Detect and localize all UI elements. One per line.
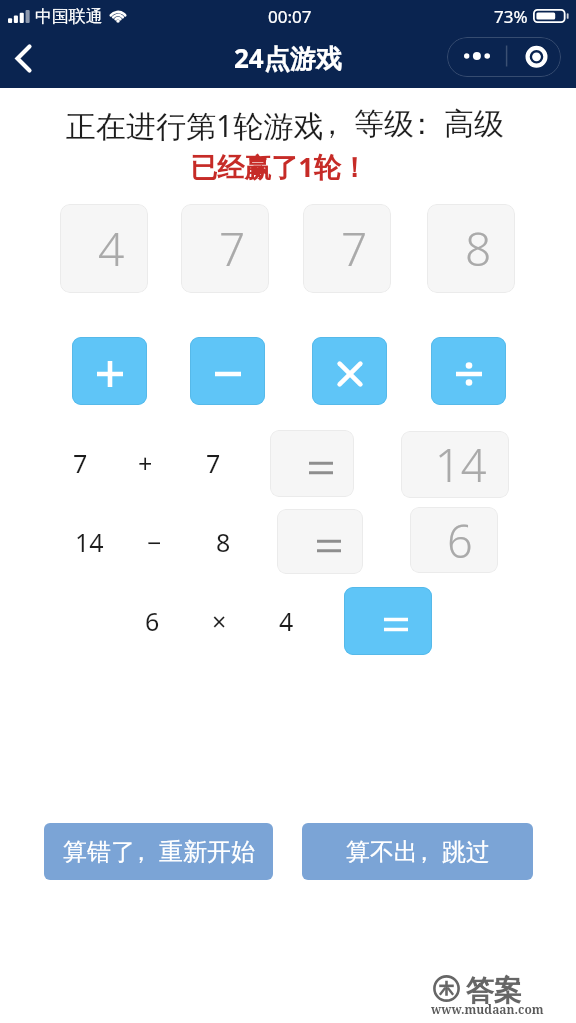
button[interactable]: Subtract <box>190 337 265 405</box>
staticText: 正在进行第1轮游戏 <box>66 105 324 146</box>
staticText: 6 <box>447 510 473 571</box>
staticText: 重新开始 <box>159 837 255 867</box>
staticText: 8 <box>216 525 231 559</box>
staticText: + <box>138 446 153 480</box>
button[interactable]: 7 <box>303 204 391 293</box>
staticText: × <box>212 604 227 638</box>
staticText: 答案 <box>466 973 522 1008</box>
button[interactable]: 8 <box>427 204 515 293</box>
staticText: 6 <box>145 604 160 638</box>
button[interactable]: Divide <box>431 337 506 405</box>
staticText: 14 <box>435 434 487 495</box>
staticText: 算不出 <box>346 837 418 867</box>
button[interactable]: Multiply <box>312 337 387 405</box>
staticText: 24点游戏 <box>234 40 342 76</box>
staticText: 等级 <box>354 105 414 143</box>
button[interactable]: 14 <box>401 431 509 498</box>
button[interactable]: 算错了 <box>44 823 273 880</box>
staticText: 8 <box>465 217 492 280</box>
staticText: 7 <box>206 446 221 480</box>
staticText: ， <box>317 105 347 143</box>
button[interactable]: 6 <box>410 507 498 573</box>
staticText: 已经赢了1轮！ <box>0 148 567 185</box>
button[interactable]: Equals <box>277 509 363 574</box>
staticText: 高级 <box>444 105 504 143</box>
staticText: 7 <box>219 217 246 280</box>
button[interactable]: Equals <box>270 430 354 497</box>
button[interactable]: 7 <box>181 204 269 293</box>
staticText: 7 <box>341 217 368 280</box>
button[interactable]: 4 <box>60 204 148 293</box>
staticText: 跳过 <box>442 837 490 867</box>
staticText: 中国联通 <box>35 6 103 27</box>
button[interactable]: More options <box>447 37 504 77</box>
button[interactable]: Close mini program <box>504 37 561 77</box>
staticText: ， <box>129 837 153 867</box>
staticText: www.mudaan.com <box>431 1001 544 1017</box>
staticText: 00:07 <box>268 5 312 28</box>
staticText: 算错了 <box>63 837 135 867</box>
staticText: 4 <box>98 217 125 280</box>
button[interactable]: Add <box>72 337 147 405</box>
staticText: 14 <box>75 525 104 559</box>
staticText: 7 <box>73 446 88 480</box>
staticText: − <box>147 525 162 559</box>
staticText: ， <box>412 837 436 867</box>
button[interactable]: Back <box>0 35 46 81</box>
button[interactable]: 算不出 <box>302 823 533 880</box>
staticText: ： <box>407 105 437 143</box>
staticText: 4 <box>279 604 294 638</box>
button[interactable]: Equals <box>344 587 432 655</box>
staticText: 73% <box>494 5 528 28</box>
